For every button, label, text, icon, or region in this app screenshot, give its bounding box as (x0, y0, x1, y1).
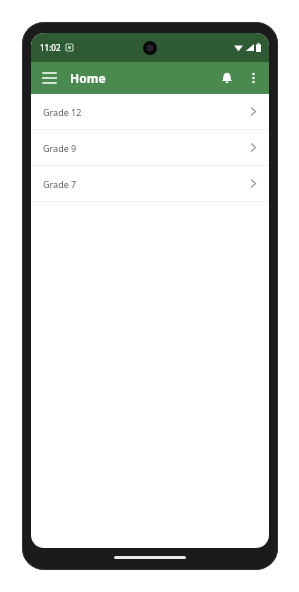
button[interactable]: Grade 12 (31, 94, 269, 129)
staticText: Grade 12 (43, 106, 82, 118)
button[interactable]: Open navigation menu (36, 65, 62, 91)
staticText: Home (70, 70, 106, 86)
staticText: Grade 9 (43, 142, 77, 154)
button[interactable]: More options (240, 65, 266, 91)
staticText: Grade 7 (43, 178, 77, 190)
button[interactable]: Grade 9 (31, 130, 269, 165)
button[interactable]: Notifications (214, 65, 240, 91)
staticText: 11:02 (40, 42, 61, 53)
button[interactable]: Grade 7 (31, 166, 269, 201)
